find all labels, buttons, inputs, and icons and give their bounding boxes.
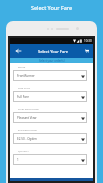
button[interactable]: Cart — [80, 44, 93, 58]
button[interactable]: FrontRunner — [13, 70, 87, 81]
button[interactable]: Full Fare — [13, 91, 87, 102]
staticText: Full Fare — [17, 95, 81, 99]
staticText: 10:30 — [84, 39, 92, 43]
button[interactable]: $2.50 - Ogden — [13, 133, 87, 144]
staticText: QUANTITY — [18, 150, 29, 153]
button[interactable]: Pleasant View — [13, 112, 87, 123]
staticText: START DESTINATION — [18, 108, 40, 111]
staticText: Select Your Fare — [26, 49, 80, 54]
staticText: Select Your Fare — [0, 4, 103, 11]
staticText: FARE CLASS — [18, 87, 30, 90]
staticText: Pleasant View — [17, 116, 81, 120]
button[interactable]: 1 — [13, 154, 87, 165]
staticText: END DESTINATION — [18, 129, 38, 132]
staticText: ROUTE — [18, 66, 26, 69]
staticText: FrontRunner — [17, 74, 81, 78]
staticText: 1 — [17, 158, 81, 162]
button[interactable]: Back — [10, 44, 26, 58]
staticText: $2.50 - Ogden — [17, 137, 81, 141]
button[interactable]: Select your order(s) — [10, 58, 93, 63]
staticText: Select your order(s) — [39, 59, 65, 63]
